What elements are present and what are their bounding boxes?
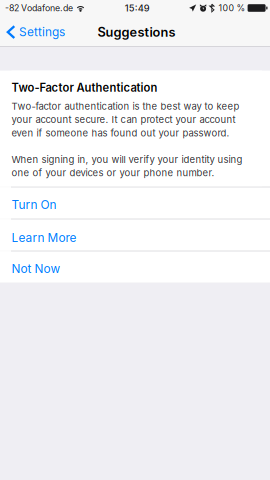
staticText: When signing in, you will verify your id… bbox=[11, 154, 242, 165]
staticText: Turn On bbox=[11, 197, 56, 212]
staticText: 15:49 bbox=[125, 2, 150, 14]
button[interactable]: Not Now bbox=[0, 252, 270, 283]
staticText: Learn More bbox=[11, 230, 76, 245]
staticText: Not Now bbox=[11, 261, 60, 276]
staticText: one of your devices or your phone number… bbox=[11, 167, 214, 179]
staticText: your account secure. It can protect your… bbox=[11, 114, 235, 125]
button[interactable]: Turn On bbox=[0, 188, 270, 219]
staticText: Two-Factor Authentication bbox=[11, 81, 157, 94]
staticText: 100 % bbox=[218, 3, 245, 13]
staticText: Two-factor authentication is the best wa… bbox=[11, 101, 239, 112]
staticText: -82 Vodafone.de bbox=[5, 3, 73, 13]
staticText: even if someone has found out your passw… bbox=[11, 127, 229, 139]
staticText: Suggestions bbox=[97, 24, 175, 40]
button[interactable]: Learn More bbox=[0, 220, 270, 251]
staticText: Settings bbox=[19, 25, 65, 39]
button[interactable]: Settings bbox=[0, 19, 71, 45]
